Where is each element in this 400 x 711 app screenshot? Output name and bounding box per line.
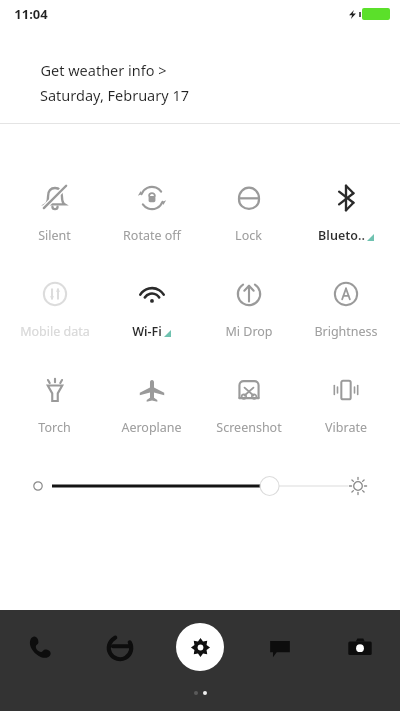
staticText: Wi-Fi [132,323,162,340]
button[interactable]: Wi-Fi [103,277,200,340]
staticText: 11:04 [14,5,48,23]
staticText: Vibrate [325,419,367,436]
staticText: Lock [235,227,262,244]
button[interactable]: Lock [200,181,297,244]
staticText: Mobile data [20,323,90,340]
button[interactable]: Brightness [297,277,394,340]
staticText: Torch [38,419,71,436]
staticText: Rotate off [123,227,181,244]
staticText: Saturday, February 17 [40,85,189,105]
button[interactable]: Mobile data [6,277,103,340]
button[interactable]: Vibrate [297,373,394,436]
staticText: Silent [38,227,71,244]
staticText: Brightness [314,323,378,340]
button[interactable]: Silent [6,181,103,244]
button[interactable]: Mi Drop [200,277,297,340]
button[interactable]: Blueto.. [297,181,394,244]
staticText: Aeroplane [121,419,182,436]
button[interactable]: Phone [17,624,63,670]
staticText: Get weather info > [40,60,167,80]
staticText: Mi Drop [225,323,273,340]
button[interactable]: Camera [337,624,383,670]
staticText: Blueto.. [318,227,365,244]
button[interactable]: Rotate off [103,181,200,244]
button[interactable]: Torch [6,373,103,436]
staticText: Screenshot [216,419,282,436]
button[interactable]: Settings [176,623,224,671]
button[interactable]: Browser [97,624,143,670]
button[interactable]: Aeroplane [103,373,200,436]
button[interactable]: Messages [257,624,303,670]
button[interactable]: Brightness slider [0,468,400,504]
button[interactable]: Screenshot [200,373,297,436]
